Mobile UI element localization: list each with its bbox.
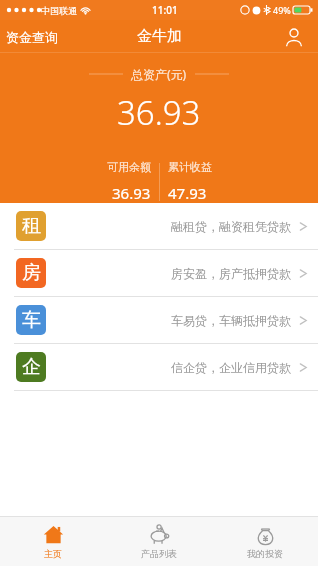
- staticText: 车易贷，车辆抵押贷款: [171, 313, 291, 328]
- button[interactable]: 企: [0, 344, 318, 390]
- button[interactable]: 资金查询: [6, 29, 58, 45]
- button[interactable]: 产品列表: [106, 517, 212, 566]
- staticText: 信企贷，企业信用贷款: [171, 360, 291, 375]
- button[interactable]: 租: [0, 203, 318, 249]
- staticText: 产品列表: [141, 548, 177, 559]
- button[interactable]: Profile: [280, 23, 308, 51]
- staticText: 36.93: [112, 183, 151, 203]
- staticText: 可用余额: [107, 160, 151, 174]
- staticText: 资金查询: [6, 29, 58, 45]
- staticText: 累计收益: [168, 160, 212, 174]
- staticText: 主页: [44, 548, 62, 559]
- staticText: 企: [22, 355, 41, 379]
- staticText: 11:01: [152, 3, 178, 17]
- staticText: 49%: [273, 4, 291, 16]
- staticText: 租: [22, 214, 41, 238]
- staticText: 中国联通: [41, 5, 77, 16]
- staticText: 房安盈，房产抵押贷款: [171, 266, 291, 281]
- button[interactable]: 车: [0, 297, 318, 343]
- staticText: 融租贷，融资租凭贷款: [171, 219, 291, 234]
- staticText: 车: [22, 308, 41, 332]
- staticText: 36.93: [117, 90, 201, 135]
- staticText: 总资产(元): [131, 66, 187, 82]
- staticText: 47.93: [168, 183, 207, 203]
- button[interactable]: 房: [0, 250, 318, 296]
- button[interactable]: 主页: [0, 517, 106, 566]
- staticText: 房: [22, 261, 41, 285]
- button[interactable]: 我的投资: [212, 517, 318, 566]
- staticText: 我的投资: [247, 548, 283, 559]
- staticText: 金牛加: [137, 27, 182, 46]
